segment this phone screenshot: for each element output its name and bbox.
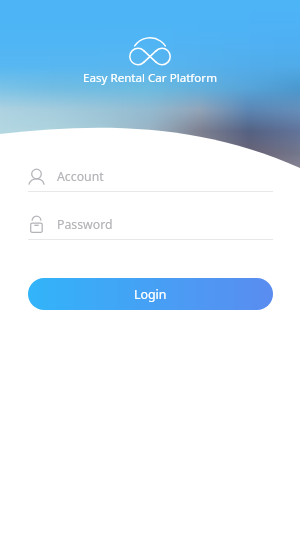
- staticText: Login: [134, 286, 167, 303]
- button[interactable]: Account: [28, 163, 273, 192]
- staticText: Password: [57, 216, 113, 233]
- staticText: Account: [57, 168, 104, 185]
- button[interactable]: Password: [28, 211, 273, 240]
- staticText: Easy Rental Car Platform: [83, 70, 218, 86]
- button[interactable]: Login: [28, 278, 273, 310]
